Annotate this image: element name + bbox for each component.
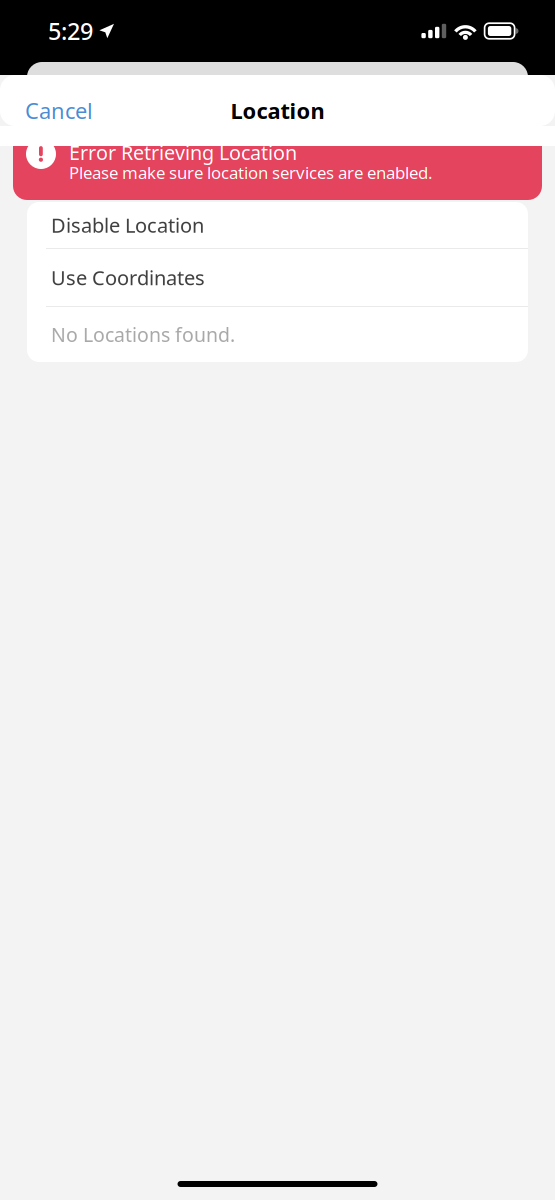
staticText: Location [230, 96, 324, 125]
staticText: Please make sure location services are e… [69, 161, 433, 184]
staticText: Cancel [25, 96, 93, 125]
staticText: No Locations found. [51, 321, 235, 348]
staticText: Disable Location [51, 211, 204, 239]
staticText: Error Retrieving Location [69, 139, 297, 166]
staticText: Use Coordinates [51, 264, 205, 291]
button[interactable]: Use Coordinates [27, 249, 528, 306]
button[interactable]: No Locations found. [27, 307, 528, 362]
staticText: 5:29 [48, 15, 93, 47]
button[interactable]: Cancel [25, 96, 93, 125]
button[interactable]: Disable Location [27, 202, 528, 248]
